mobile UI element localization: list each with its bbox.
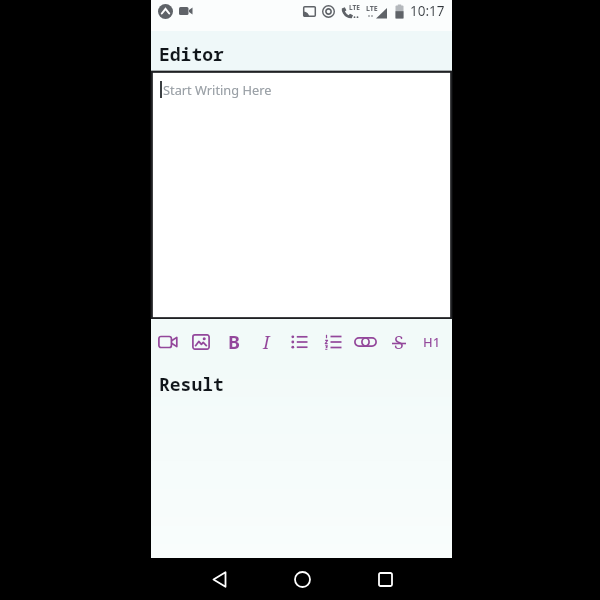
staticText: B: [228, 330, 240, 355]
button[interactable]: Start Writing Here: [151, 71, 452, 319]
button[interactable]: H1: [415, 319, 448, 365]
button[interactable]: [316, 319, 349, 365]
button[interactable]: S: [382, 319, 415, 365]
button[interactable]: B: [217, 319, 250, 365]
button[interactable]: [202, 562, 236, 596]
button[interactable]: [283, 319, 316, 365]
button[interactable]: I: [250, 319, 283, 365]
button[interactable]: [368, 562, 402, 596]
staticText: Result: [159, 372, 224, 397]
staticText: Start Writing Here: [163, 81, 272, 98]
staticText: LTE: [349, 3, 360, 12]
staticText: Editor: [159, 42, 224, 67]
staticText: H1: [423, 333, 441, 351]
staticText: S: [394, 330, 404, 355]
button[interactable]: [184, 319, 217, 365]
button[interactable]: [349, 319, 382, 365]
button[interactable]: [285, 562, 319, 596]
staticText: 10:17: [410, 2, 445, 20]
staticText: I: [263, 330, 270, 355]
button[interactable]: [151, 319, 184, 365]
staticText: LTE: [366, 4, 378, 14]
